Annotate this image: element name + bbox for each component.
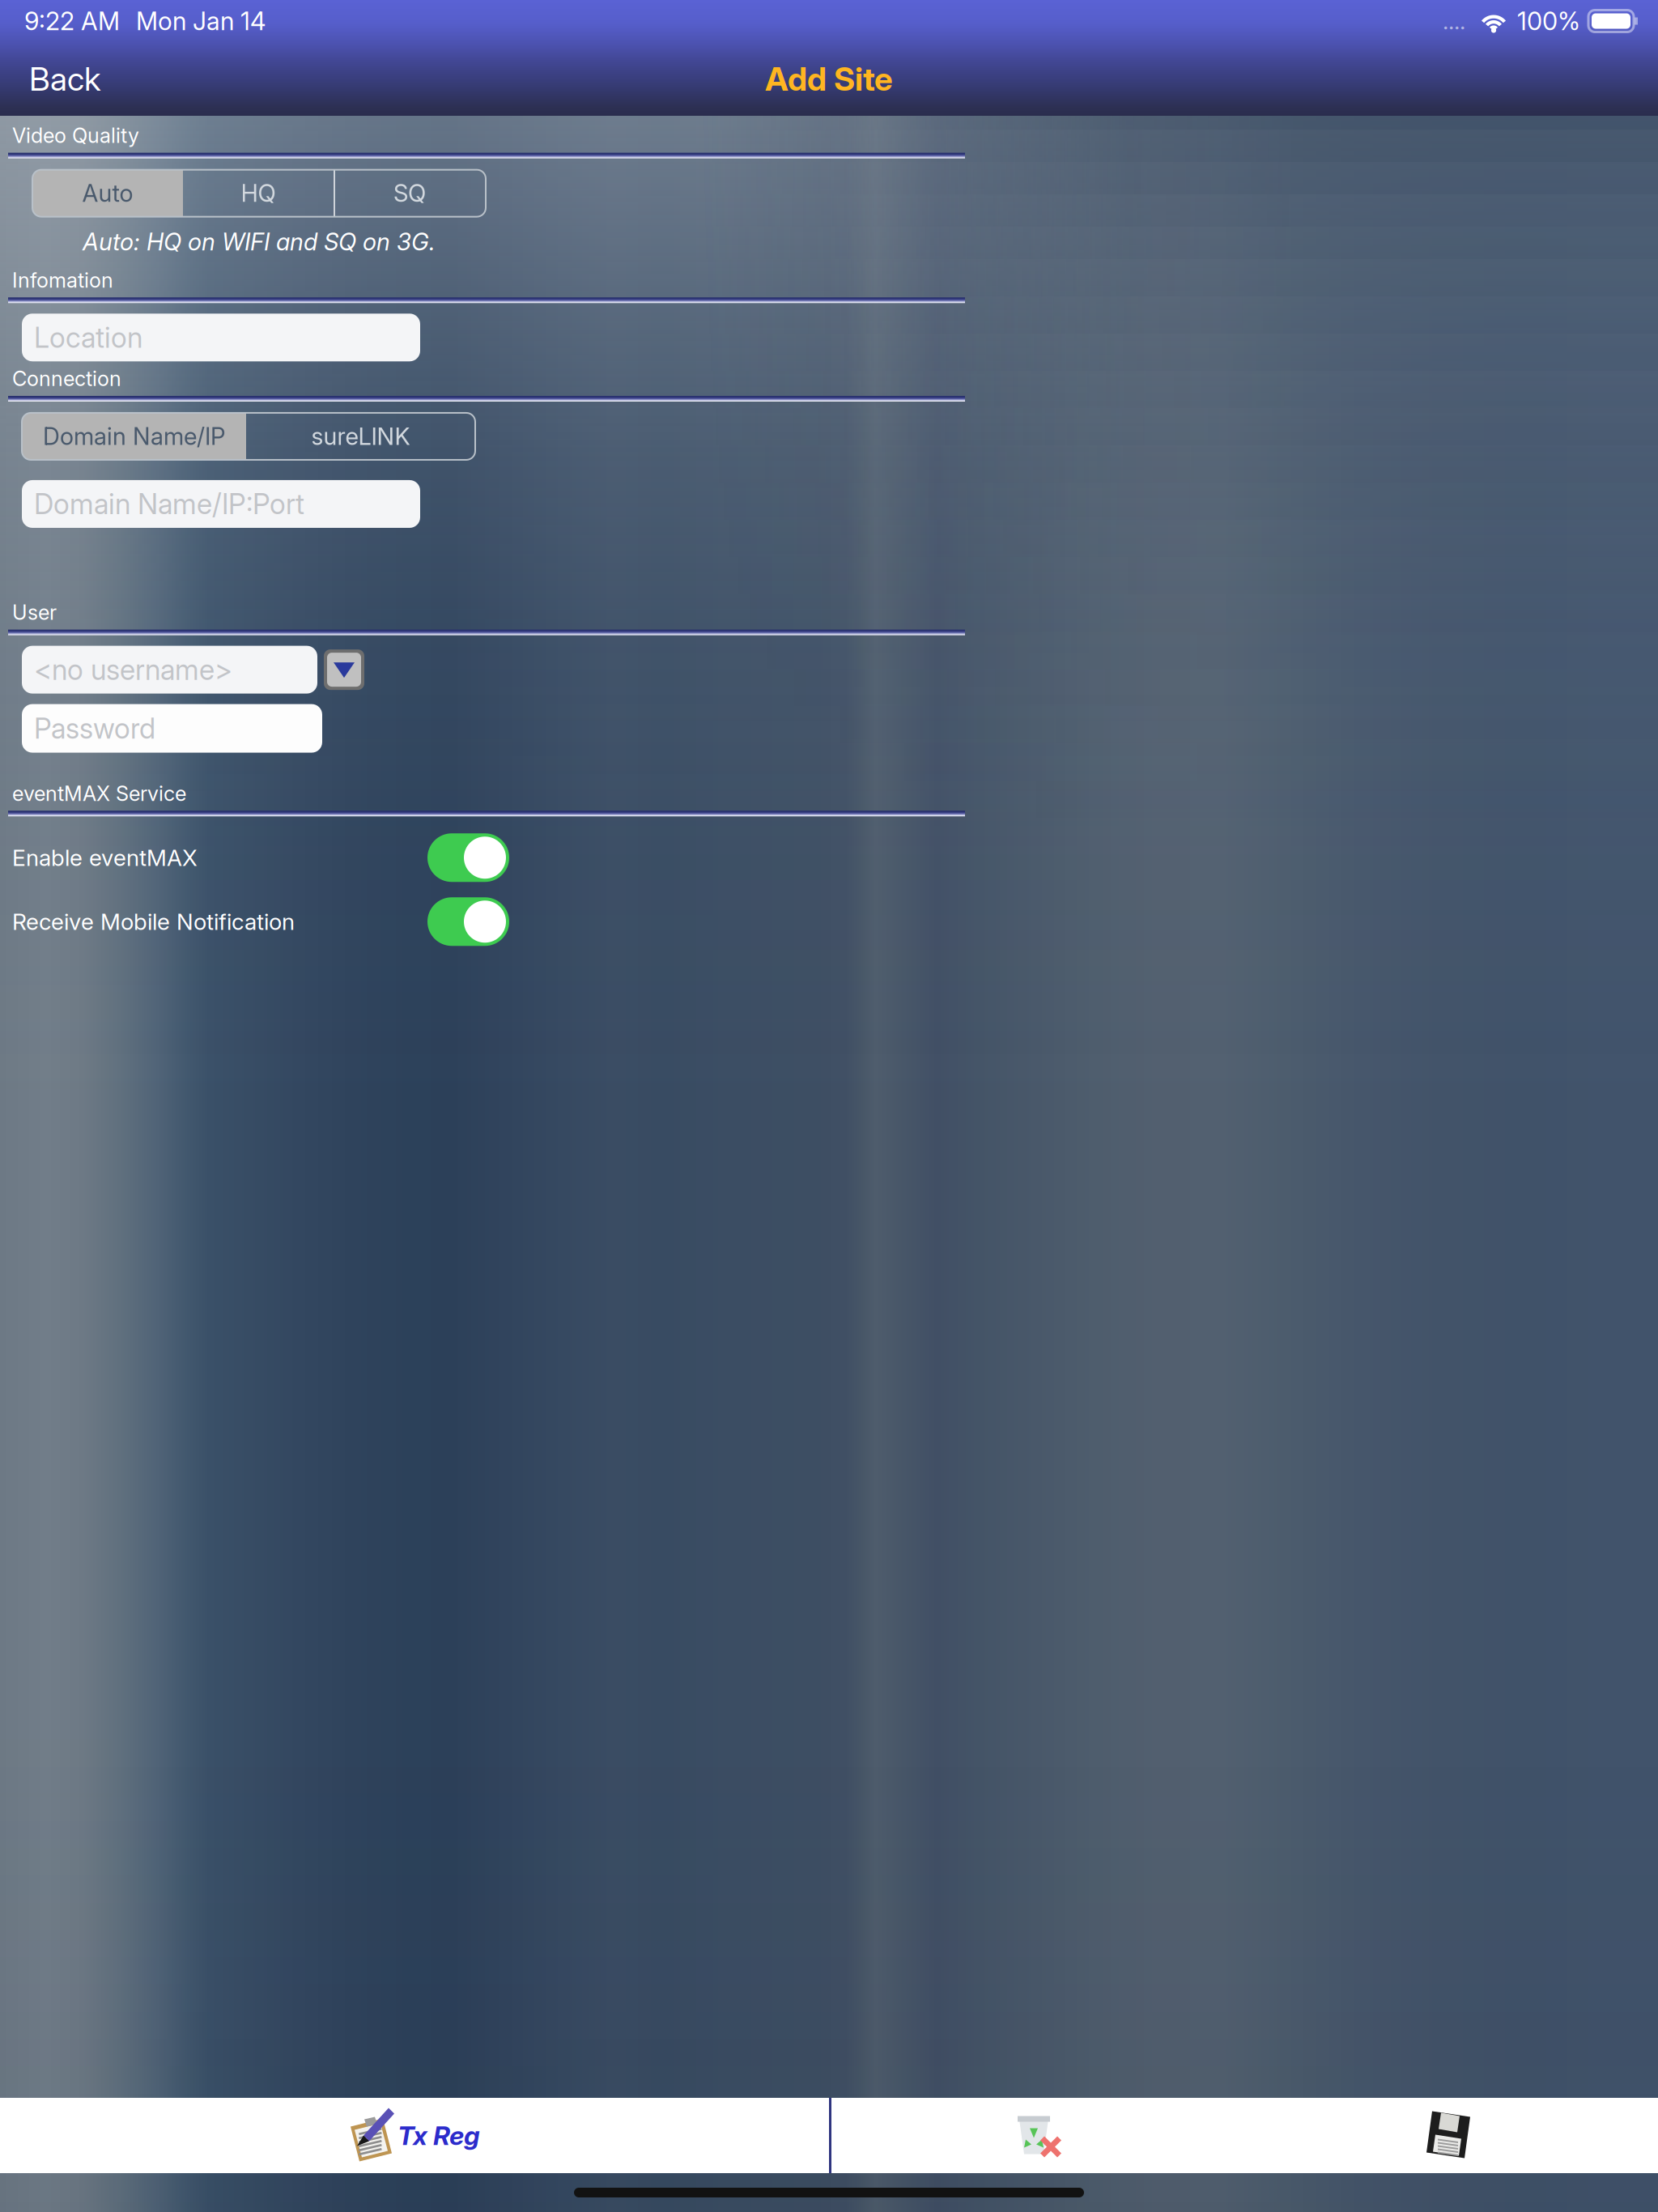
button[interactable]: Delete <box>829 2098 1243 2173</box>
button[interactable]: <no username> <box>22 646 317 694</box>
button[interactable]: Domain Name/IP:Port <box>22 480 420 528</box>
staticText: 100% <box>1517 6 1580 36</box>
staticText: HQ <box>241 179 276 208</box>
button[interactable]: Choose user <box>324 649 364 690</box>
staticText: Auto: HQ on WIFI and SQ on 3G. <box>83 227 436 256</box>
button[interactable]: Toggle <box>427 897 509 946</box>
button[interactable]: Password <box>22 704 322 753</box>
staticText: Connection <box>12 366 121 391</box>
button[interactable]: sureLINK <box>246 413 475 460</box>
staticText: Enable eventMAX <box>12 844 198 871</box>
button[interactable]: Tx Reg <box>0 2098 829 2173</box>
staticText: sureLINK <box>311 422 410 451</box>
button[interactable]: Auto <box>32 170 183 217</box>
staticText: <no username> <box>34 653 232 687</box>
staticText: Location <box>34 320 142 354</box>
staticText: SQ <box>393 179 426 208</box>
staticText: Receive Mobile Notification <box>12 908 295 935</box>
button[interactable]: HQ <box>183 170 334 217</box>
button[interactable]: Domain Name/IP <box>22 413 246 460</box>
staticText: Tx Reg <box>397 2120 480 2151</box>
staticText: Back <box>29 59 100 99</box>
button[interactable]: Back <box>11 48 118 110</box>
staticText: Password <box>34 711 155 745</box>
staticText: 9:22 AM <box>24 6 120 36</box>
staticText: Add Site <box>765 59 893 99</box>
button[interactable]: Toggle <box>427 833 509 882</box>
staticText: Mon Jan 14 <box>136 6 266 36</box>
button[interactable]: SQ <box>334 170 486 217</box>
staticText: Video Quality <box>12 123 139 148</box>
staticText: .... <box>1443 7 1465 35</box>
staticText: Domain Name/IP:Port <box>34 487 304 521</box>
staticText: User <box>12 600 57 625</box>
button[interactable]: Location <box>22 314 420 361</box>
button[interactable]: Save <box>1243 2098 1658 2173</box>
staticText: Auto <box>82 179 133 208</box>
staticText: Domain Name/IP <box>43 422 225 451</box>
staticText: eventMAX Service <box>12 781 186 806</box>
staticText: Infomation <box>12 268 113 293</box>
